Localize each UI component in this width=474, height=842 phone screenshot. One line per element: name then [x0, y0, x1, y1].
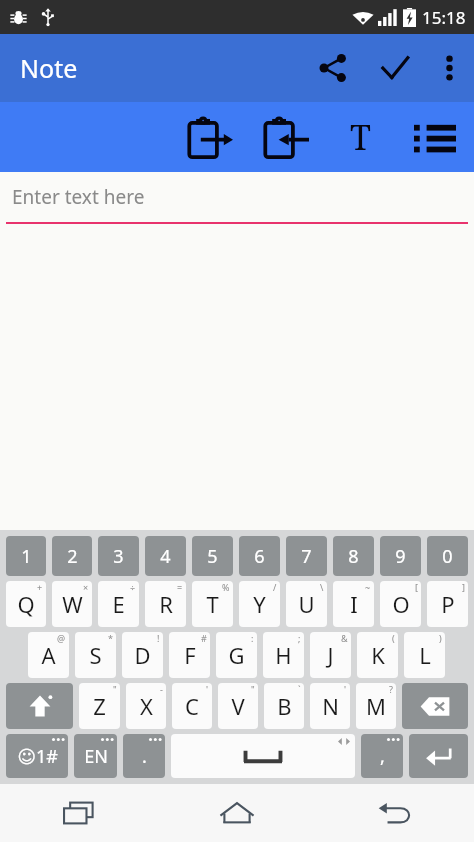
button[interactable]: 0: [427, 536, 468, 576]
button[interactable]: 2: [52, 536, 92, 576]
staticText: Z: [93, 691, 106, 721]
button[interactable]: Recents: [0, 784, 158, 842]
button[interactable]: Back: [316, 784, 474, 842]
button[interactable]: EN: [74, 734, 117, 778]
button[interactable]: W: [52, 581, 92, 627]
staticText: H: [275, 640, 292, 670]
button[interactable]: R: [145, 581, 186, 627]
button[interactable]: M: [356, 683, 396, 729]
button[interactable]: List: [396, 102, 474, 172]
button[interactable]: Z: [79, 683, 120, 729]
button[interactable]: Home: [158, 784, 316, 842]
button[interactable]: A: [28, 632, 69, 678]
button[interactable]: Y: [239, 581, 280, 627]
button[interactable]: Q: [6, 581, 46, 627]
button[interactable]: G: [216, 632, 257, 678]
button[interactable]: L: [404, 632, 445, 678]
staticText: ": [113, 683, 117, 695]
staticText: T: [350, 114, 371, 160]
staticText: Enter text here: [12, 184, 145, 210]
staticText: ?: [389, 683, 393, 695]
staticText: ;: [298, 632, 301, 644]
staticText: F: [184, 640, 196, 670]
staticText: :: [251, 632, 254, 644]
staticText: U: [298, 589, 315, 619]
button[interactable]: 6: [239, 536, 280, 576]
button[interactable]: N: [310, 683, 350, 729]
button[interactable]: T: [192, 581, 233, 627]
staticText: 15:18: [422, 6, 466, 29]
button[interactable]: Shift: [6, 683, 73, 729]
button[interactable]: C: [172, 683, 212, 729]
staticText: T: [206, 589, 219, 619]
button[interactable]: U: [286, 581, 327, 627]
staticText: ~: [365, 581, 371, 593]
staticText: G: [228, 640, 245, 670]
staticText: %: [222, 581, 230, 593]
staticText: 4: [160, 544, 171, 569]
staticText: ": [251, 683, 255, 695]
button[interactable]: ,: [361, 734, 403, 778]
staticText: @: [57, 632, 66, 644]
staticText: E: [112, 589, 125, 619]
staticText: B: [277, 691, 292, 721]
button[interactable]: Space: [171, 734, 355, 778]
button[interactable]: Copy to clipboard: [172, 102, 248, 172]
button[interactable]: 8: [333, 536, 374, 576]
staticText: ÷: [130, 581, 136, 593]
staticText: .: [142, 744, 147, 769]
staticText: 6: [254, 544, 265, 569]
staticText: /: [273, 581, 277, 593]
staticText: X: [140, 691, 153, 721]
staticText: ): [439, 632, 442, 644]
button[interactable]: O: [380, 581, 421, 627]
staticText: S: [89, 640, 102, 670]
button[interactable]: K: [357, 632, 398, 678]
button[interactable]: 7: [286, 536, 327, 576]
staticText: A: [41, 640, 56, 670]
button[interactable]: 5: [192, 536, 233, 576]
button[interactable]: Backspace: [402, 683, 468, 729]
button[interactable]: V: [218, 683, 258, 729]
staticText: 0: [442, 544, 453, 569]
staticText: ': [344, 683, 347, 695]
staticText: =: [177, 581, 183, 593]
button[interactable]: H: [263, 632, 304, 678]
button[interactable]: 4: [145, 536, 186, 576]
button[interactable]: I: [333, 581, 374, 627]
staticText: ×: [83, 581, 89, 593]
button[interactable]: Save: [364, 37, 426, 99]
button[interactable]: 1: [6, 536, 46, 576]
staticText: 8: [348, 544, 359, 569]
button[interactable]: 3: [98, 536, 139, 576]
staticText: \: [320, 581, 324, 593]
button[interactable]: Paste from clipboard: [248, 102, 324, 172]
staticText: O: [392, 589, 410, 619]
staticText: ,: [380, 744, 385, 769]
button[interactable]: 9: [380, 536, 421, 576]
staticText: EN: [84, 744, 108, 769]
staticText: Y: [253, 589, 266, 619]
button[interactable]: Enter: [409, 734, 468, 778]
button[interactable]: J: [310, 632, 351, 678]
staticText: N: [322, 691, 339, 721]
staticText: M: [366, 691, 386, 721]
button[interactable]: D: [122, 632, 163, 678]
button[interactable]: F: [169, 632, 210, 678]
button[interactable]: B: [264, 683, 304, 729]
staticText: (: [392, 632, 395, 644]
staticText: P: [441, 589, 455, 619]
button[interactable]: More options: [426, 45, 472, 91]
staticText: &: [341, 632, 348, 644]
staticText: -: [160, 683, 163, 695]
button[interactable]: .: [123, 734, 165, 778]
button[interactable]: X: [126, 683, 166, 729]
staticText: 1: [21, 544, 32, 569]
button[interactable]: Share: [302, 37, 364, 99]
button[interactable]: ☺1#: [6, 734, 68, 778]
staticText: I: [350, 589, 358, 619]
button[interactable]: E: [98, 581, 139, 627]
button[interactable]: Text format: [324, 102, 396, 172]
button[interactable]: P: [427, 581, 468, 627]
button[interactable]: S: [75, 632, 116, 678]
